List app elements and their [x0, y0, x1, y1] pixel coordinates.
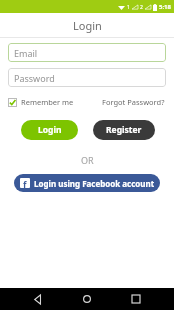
- button[interactable]: Register: [93, 120, 155, 140]
- staticText: 2: [140, 4, 143, 11]
- staticText: Password: [14, 72, 55, 84]
- button[interactable]: f: [14, 174, 160, 192]
- staticText: f: [23, 178, 27, 188]
- staticText: Remember me: [21, 97, 74, 107]
- staticText: Login using Facebook account: [34, 178, 155, 189]
- staticText: Login: [73, 18, 102, 33]
- staticText: Email: [14, 47, 38, 59]
- button[interactable]: Login: [21, 120, 78, 140]
- button[interactable]: Remember me: [8, 95, 74, 109]
- staticText: Register: [106, 124, 142, 136]
- staticText: Forgot Password?: [102, 97, 165, 107]
- button[interactable]: Back: [27, 288, 49, 310]
- staticText: OR: [81, 154, 94, 166]
- button[interactable]: Email: [8, 43, 166, 62]
- staticText: 1: [127, 4, 130, 11]
- button[interactable]: Forgot Password?: [101, 95, 166, 109]
- staticText: Login: [38, 124, 62, 136]
- button[interactable]: Home: [76, 288, 98, 310]
- button[interactable]: Password: [8, 68, 166, 87]
- button[interactable]: Recents: [125, 288, 147, 310]
- staticText: 5:18: [159, 3, 171, 11]
